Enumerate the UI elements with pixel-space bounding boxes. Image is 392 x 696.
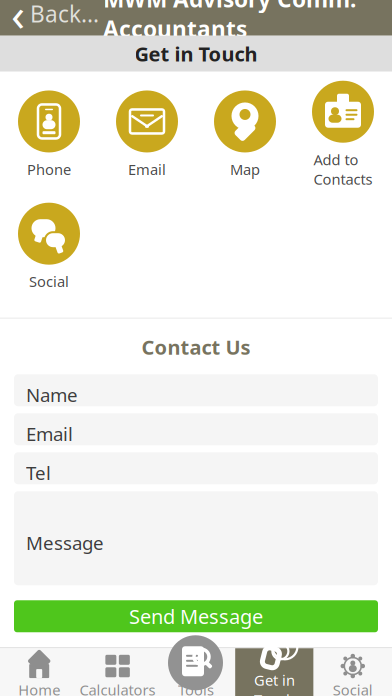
staticText: ‹	[11, 0, 25, 44]
staticText: Email	[26, 421, 73, 446]
button[interactable]: Name	[14, 374, 378, 406]
button[interactable]: Calculators	[78, 648, 157, 696]
staticText: Name	[26, 382, 78, 407]
staticText: Send Message	[129, 603, 263, 630]
button[interactable]: Map	[196, 90, 294, 179]
staticText: Get in Touch	[254, 670, 295, 696]
button[interactable]: Phone	[0, 90, 98, 179]
button[interactable]: Message	[14, 491, 378, 585]
button[interactable]: Home	[0, 648, 78, 696]
staticText: Contact Us	[141, 334, 250, 360]
staticText: Get in Touch	[134, 40, 257, 67]
staticText: Tel	[26, 460, 51, 485]
button[interactable]: Tools	[168, 635, 223, 690]
button[interactable]: Send Message	[14, 600, 378, 632]
staticText: Phone	[27, 159, 71, 179]
button[interactable]: Email	[14, 413, 378, 445]
staticText: Message	[26, 530, 104, 555]
button[interactable]: Email	[98, 90, 196, 179]
staticText: Social	[29, 272, 69, 291]
staticText: MWM Advisory Comm. Accountants	[103, 0, 356, 44]
button[interactable]: Social	[314, 648, 392, 696]
staticText: Home	[18, 680, 60, 696]
button[interactable]: Add to Contacts	[294, 81, 392, 189]
button[interactable]: Back	[0, 0, 103, 36]
button[interactable]: Get in Touch	[235, 648, 314, 696]
staticText: Social	[333, 680, 373, 696]
staticText: Email	[128, 159, 166, 179]
staticText: Back...	[30, 0, 99, 29]
staticText: Add to Contacts	[313, 150, 372, 189]
button[interactable]: Tools	[157, 648, 235, 696]
staticText: Tools	[178, 680, 214, 696]
button[interactable]: Tel	[14, 452, 378, 484]
button[interactable]: Social	[0, 203, 98, 291]
staticText: Map	[230, 159, 260, 179]
staticText: Calculators	[80, 680, 156, 696]
